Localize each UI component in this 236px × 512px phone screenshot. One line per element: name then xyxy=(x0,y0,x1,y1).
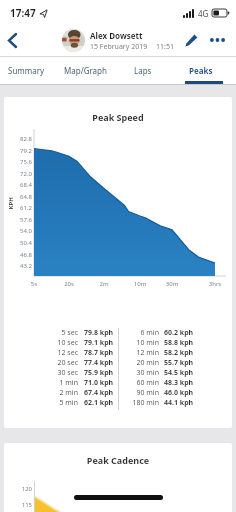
staticText: 12 min xyxy=(124,348,159,358)
staticText: Summary xyxy=(8,65,45,76)
staticText: 17:47 xyxy=(10,6,36,20)
staticText: 5 sec xyxy=(4,328,78,338)
staticText: 60 min xyxy=(124,378,159,388)
button[interactable]: Alex Dowsett xyxy=(62,29,174,52)
staticText: 48.3 kph xyxy=(164,378,194,388)
staticText: 10m xyxy=(130,280,150,288)
staticText: 20 sec xyxy=(4,358,78,368)
staticText: 20s xyxy=(59,280,79,288)
staticText: Laps xyxy=(134,65,152,76)
staticText: 5s xyxy=(24,280,44,288)
staticText: 12 sec xyxy=(4,348,78,358)
button[interactable]: Map/Graph xyxy=(64,65,107,76)
staticText: Peak Cadence xyxy=(4,454,232,466)
staticText: 180 min xyxy=(124,398,159,408)
staticText: 46.0 kph xyxy=(164,388,194,398)
staticText: 2m xyxy=(94,280,114,288)
button[interactable]: Laps xyxy=(134,65,152,76)
staticText: 78.7 kph xyxy=(84,348,114,358)
staticText: 71.0 kph xyxy=(84,378,114,388)
staticText: 11:51 xyxy=(156,42,174,52)
staticText: 55.7 kph xyxy=(164,358,194,368)
staticText: 77.4 kph xyxy=(84,358,114,368)
staticText: 3hrs xyxy=(205,280,225,288)
staticText: 30m xyxy=(162,280,182,288)
staticText: 82.8 xyxy=(12,135,32,143)
button[interactable] xyxy=(208,32,226,48)
staticText: 54.0 xyxy=(12,227,32,235)
staticText: 20 min xyxy=(124,358,159,368)
staticText: KPH xyxy=(6,196,14,209)
button[interactable]: Summary xyxy=(8,65,45,76)
staticText: 68.4 xyxy=(12,181,32,189)
staticText: 44.1 kph xyxy=(164,398,194,408)
button[interactable] xyxy=(4,32,20,48)
staticText: 1 min xyxy=(4,378,78,388)
staticText: 57.6 xyxy=(12,216,32,224)
button[interactable]: Peaks xyxy=(189,65,213,76)
staticText: 79.1 kph xyxy=(84,338,114,348)
staticText: 10 min xyxy=(124,338,159,348)
staticText: Peak Speed xyxy=(4,111,232,123)
staticText: 6 min xyxy=(124,328,159,338)
staticText: 67.4 kph xyxy=(84,388,114,398)
staticText: 15 February 2019 xyxy=(90,42,148,52)
staticText: 5 min xyxy=(4,398,78,408)
staticText: 10 sec xyxy=(4,338,78,348)
button[interactable] xyxy=(183,32,199,48)
staticText: 79.8 kph xyxy=(84,328,114,338)
staticText: 4G xyxy=(198,8,209,19)
staticText: 30 min xyxy=(124,368,159,378)
staticText: 60.2 kph xyxy=(164,328,194,338)
staticText: 61.2 xyxy=(12,204,32,212)
staticText: 46.8 xyxy=(12,251,32,259)
staticText: 50.4 xyxy=(12,239,32,247)
staticText: Alex Dowsett xyxy=(90,30,143,41)
staticText: 75.6 xyxy=(12,158,32,166)
staticText: 54.5 kph xyxy=(164,368,194,378)
staticText: 79.2 xyxy=(12,147,32,155)
staticText: 115 xyxy=(12,501,32,509)
staticText: 58.2 kph xyxy=(164,348,194,358)
staticText: 75.9 kph xyxy=(84,368,114,378)
staticText: Map/Graph xyxy=(64,65,107,76)
staticText: 43.2 xyxy=(12,262,32,270)
staticText: 64.8 xyxy=(12,193,32,201)
staticText: 2 min xyxy=(4,388,78,398)
staticText: 30 sec xyxy=(4,368,78,378)
staticText: 72.0 xyxy=(12,170,32,178)
staticText: 90 min xyxy=(124,388,159,398)
staticText: 58.8 kph xyxy=(164,338,194,348)
staticText: 62.1 kph xyxy=(84,398,114,408)
staticText: Peaks xyxy=(189,65,213,76)
staticText: 120 xyxy=(12,485,32,493)
